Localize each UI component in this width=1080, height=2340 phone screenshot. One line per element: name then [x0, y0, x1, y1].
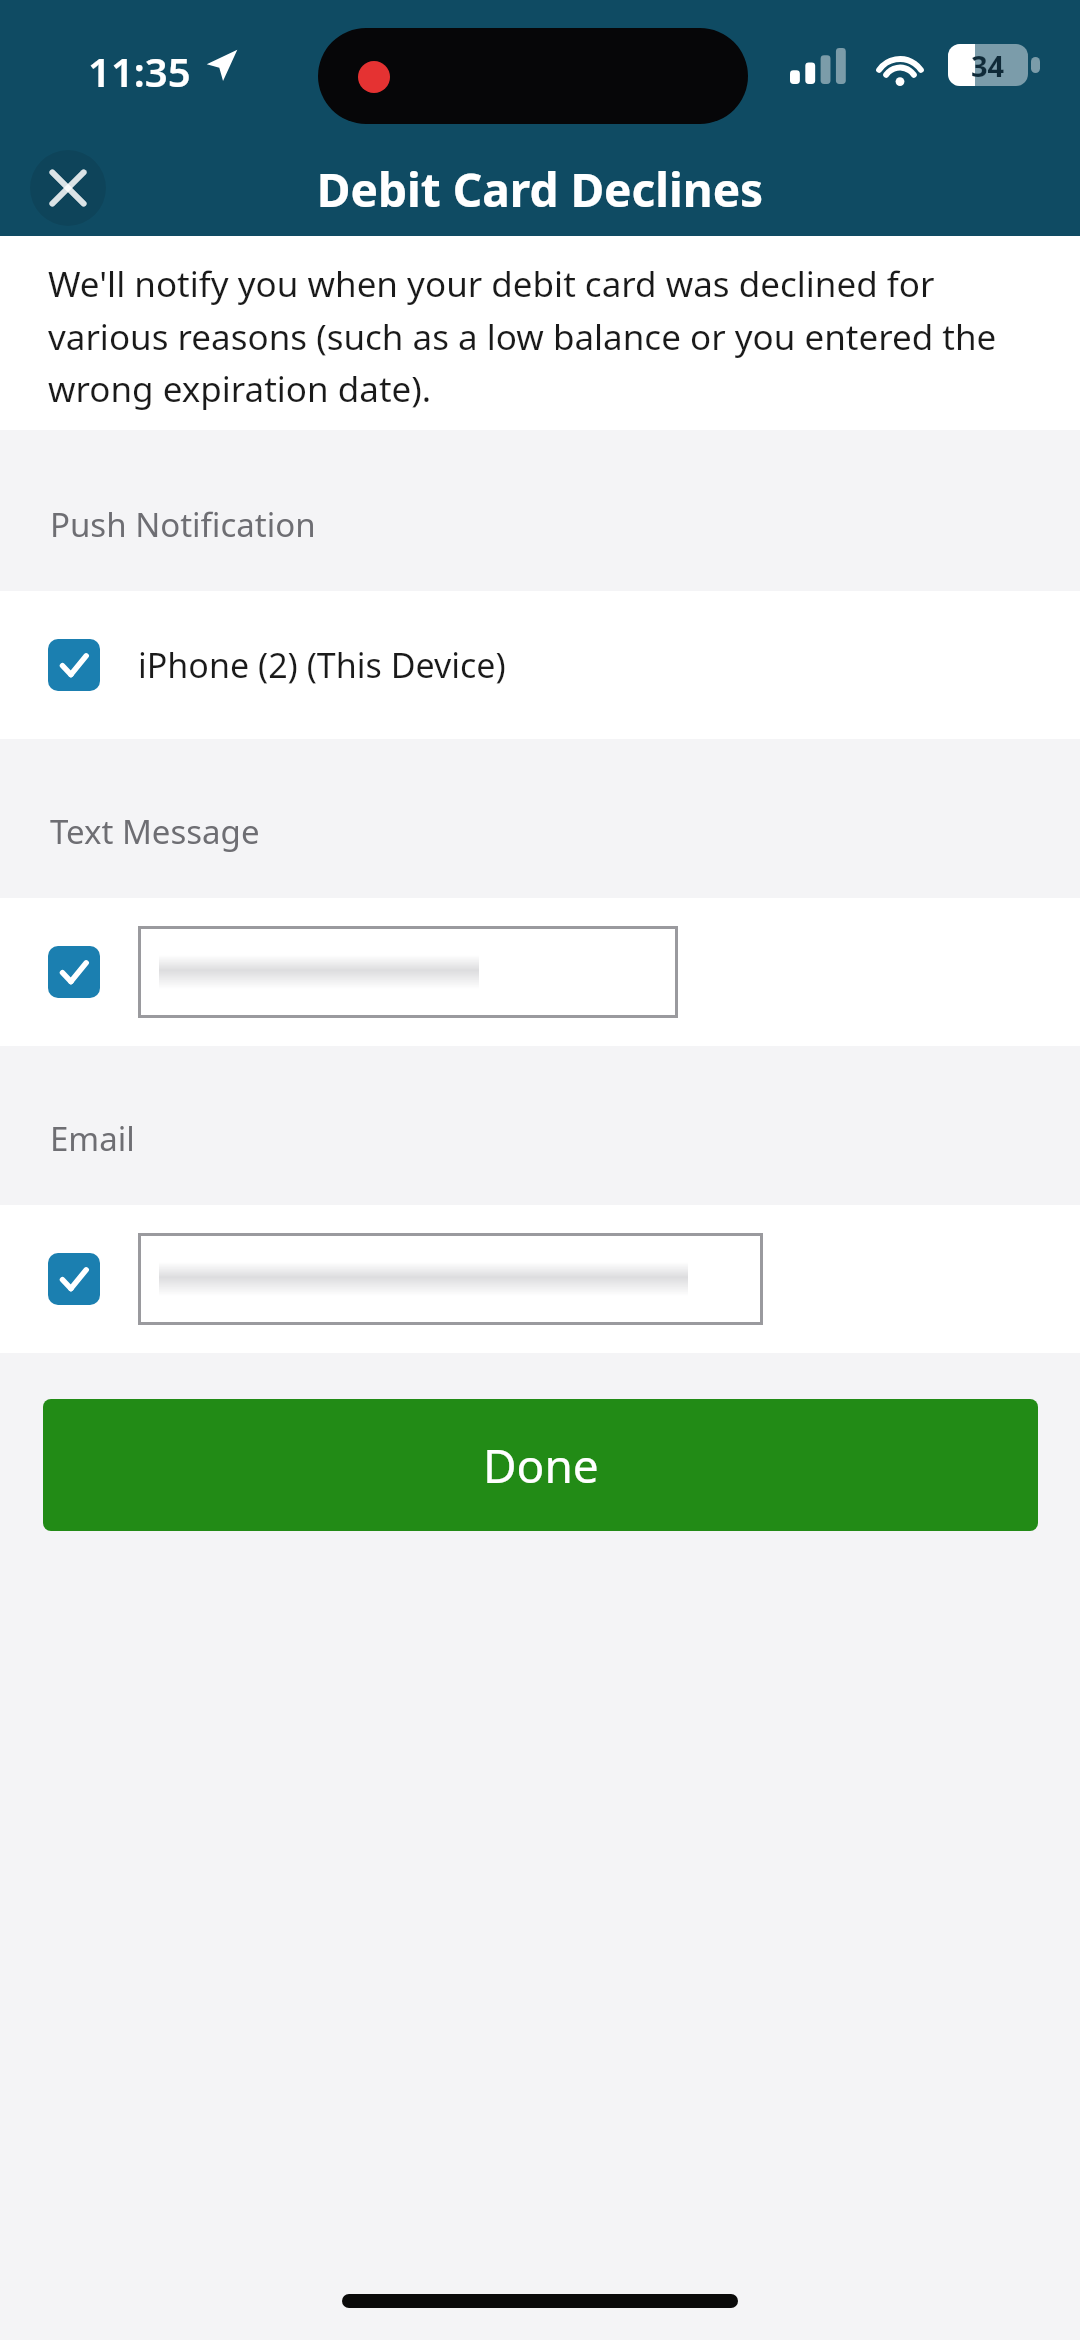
button[interactable]: Checked	[0, 898, 1080, 1046]
staticText: Debit Card Declines	[0, 158, 1080, 221]
button[interactable]: Close	[24, 144, 112, 232]
staticText: 11:35	[88, 44, 191, 98]
staticText: Push Notification	[50, 502, 316, 547]
staticText: Email	[50, 1116, 135, 1161]
other: Checked	[48, 1253, 100, 1305]
other: Checked	[48, 639, 100, 691]
other: Checked	[48, 946, 100, 998]
button[interactable]: Checked	[0, 1205, 1080, 1353]
staticText: Text Message	[50, 809, 260, 854]
staticText: We'll notify you when your debit card wa…	[48, 260, 1034, 412]
staticText: 34	[971, 46, 1005, 85]
staticText: iPhone (2) (This Device)	[138, 642, 506, 688]
button[interactable]: Done	[43, 1399, 1038, 1531]
button[interactable]: Checked	[0, 591, 1080, 739]
staticText: Done	[483, 1434, 599, 1497]
